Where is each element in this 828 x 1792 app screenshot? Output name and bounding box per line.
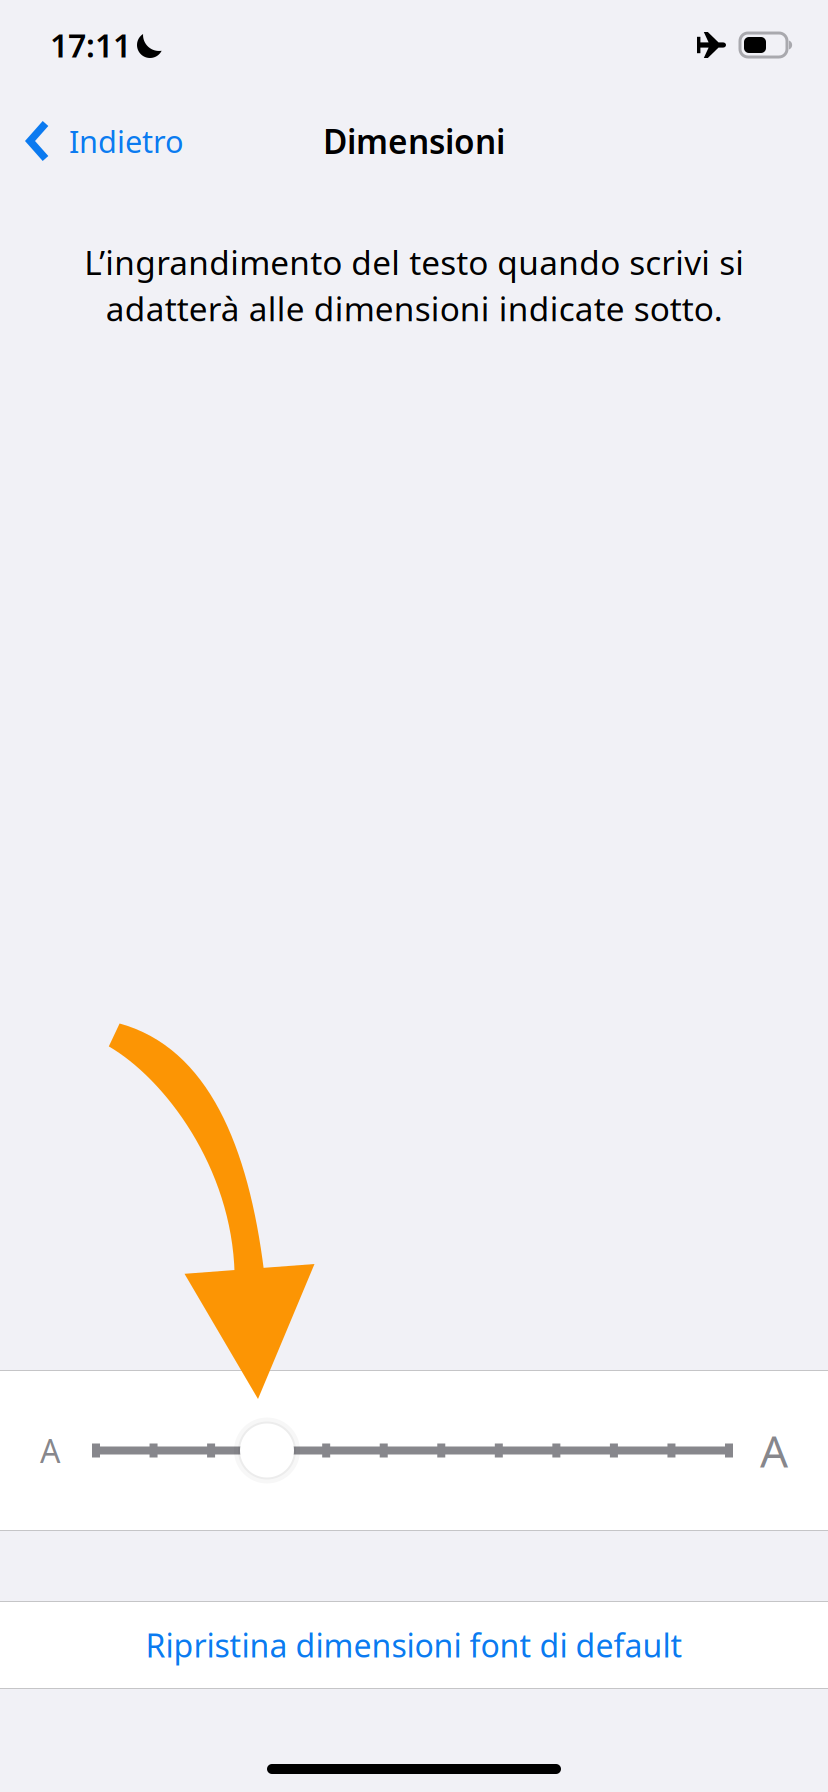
button[interactable]: Ripristina dimensioni font di default (0, 1602, 828, 1688)
staticText: Indietro (69, 121, 184, 161)
staticText: Dimensioni (323, 119, 505, 163)
staticText: A (40, 1429, 60, 1472)
button[interactable]: Indietro (0, 94, 202, 188)
staticText: L’ingrandimento del testo quando scrivi … (84, 240, 744, 330)
staticText: Ripristina dimensioni font di default (145, 1624, 682, 1666)
staticText: 17:11 (50, 24, 131, 66)
staticText: A (760, 1421, 788, 1480)
